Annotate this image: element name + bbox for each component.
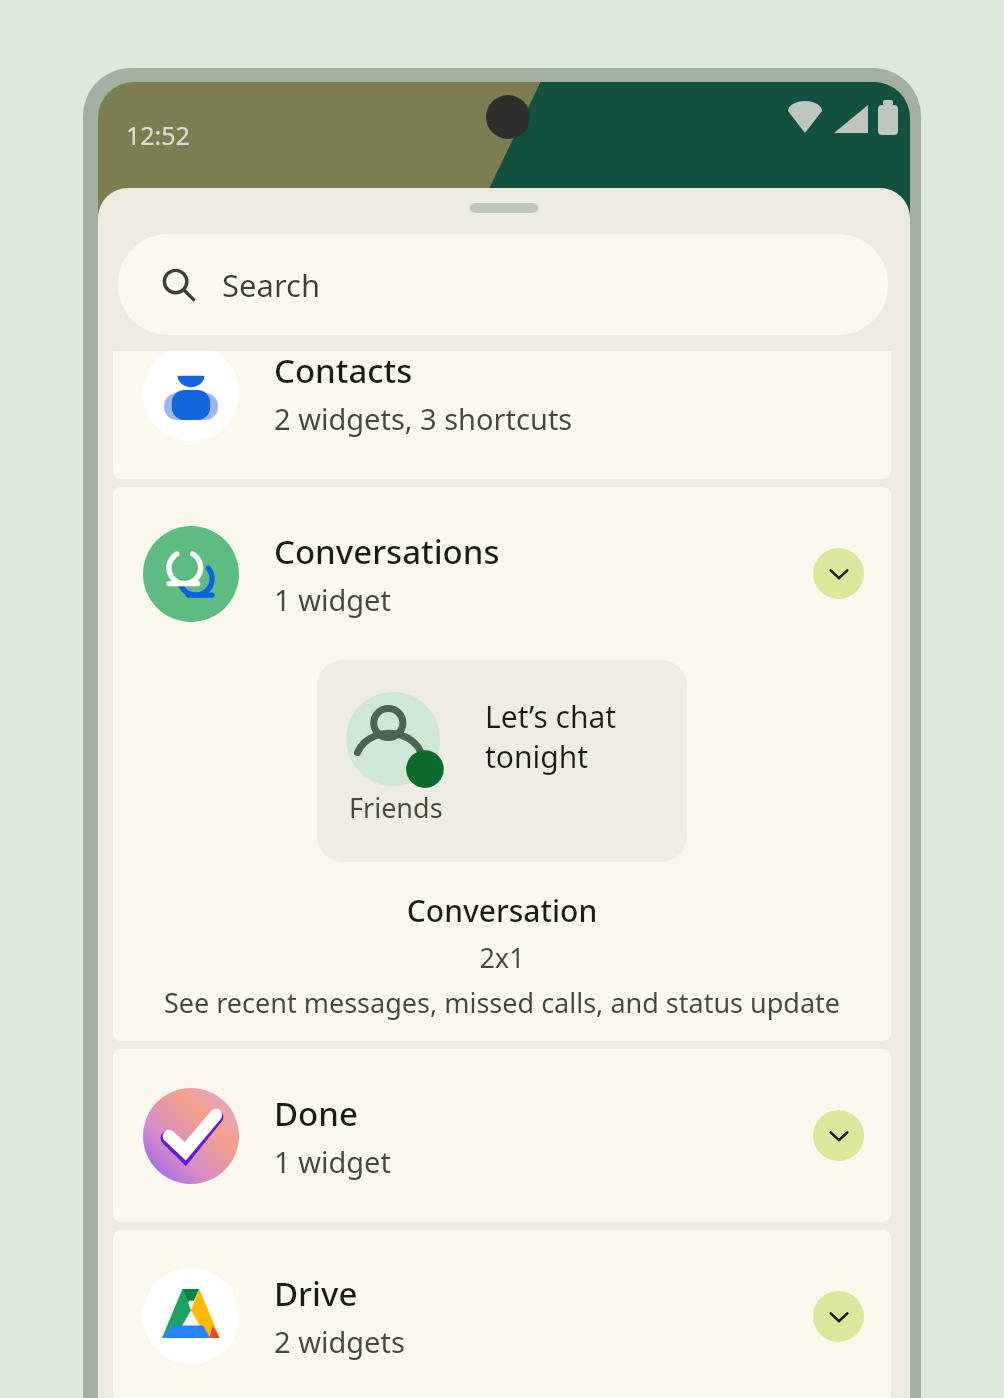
staticText: See recent messages, missed calls, and s… bbox=[113, 984, 891, 1021]
staticText: 12:52 bbox=[126, 118, 190, 152]
staticText: Done bbox=[274, 1091, 358, 1136]
staticText: 2 widgets bbox=[274, 1322, 405, 1361]
staticText: Drive bbox=[274, 1271, 358, 1316]
button[interactable]: Friends bbox=[317, 660, 687, 862]
staticText: Let’s chat tonight bbox=[485, 696, 617, 777]
staticText: Search bbox=[222, 264, 321, 306]
button[interactable]: Search bbox=[118, 234, 888, 335]
staticText: 2x1 bbox=[113, 939, 891, 976]
button[interactable]: Drive bbox=[113, 1230, 891, 1398]
staticText: Conversations bbox=[274, 529, 500, 574]
staticText: 1 widget bbox=[274, 580, 391, 619]
staticText: Friends bbox=[349, 789, 443, 826]
button[interactable]: Expand bbox=[813, 1110, 864, 1161]
button[interactable]: Contacts bbox=[113, 351, 891, 479]
button[interactable]: Conversations bbox=[113, 487, 891, 660]
staticText: Contacts bbox=[274, 351, 413, 393]
button[interactable]: Done bbox=[113, 1049, 891, 1222]
staticText: Conversation bbox=[113, 890, 891, 931]
button[interactable]: Expand bbox=[813, 1291, 864, 1342]
button[interactable]: Expand bbox=[813, 548, 864, 599]
staticText: 2 widgets, 3 shortcuts bbox=[274, 399, 573, 438]
staticText: 1 widget bbox=[274, 1142, 391, 1181]
